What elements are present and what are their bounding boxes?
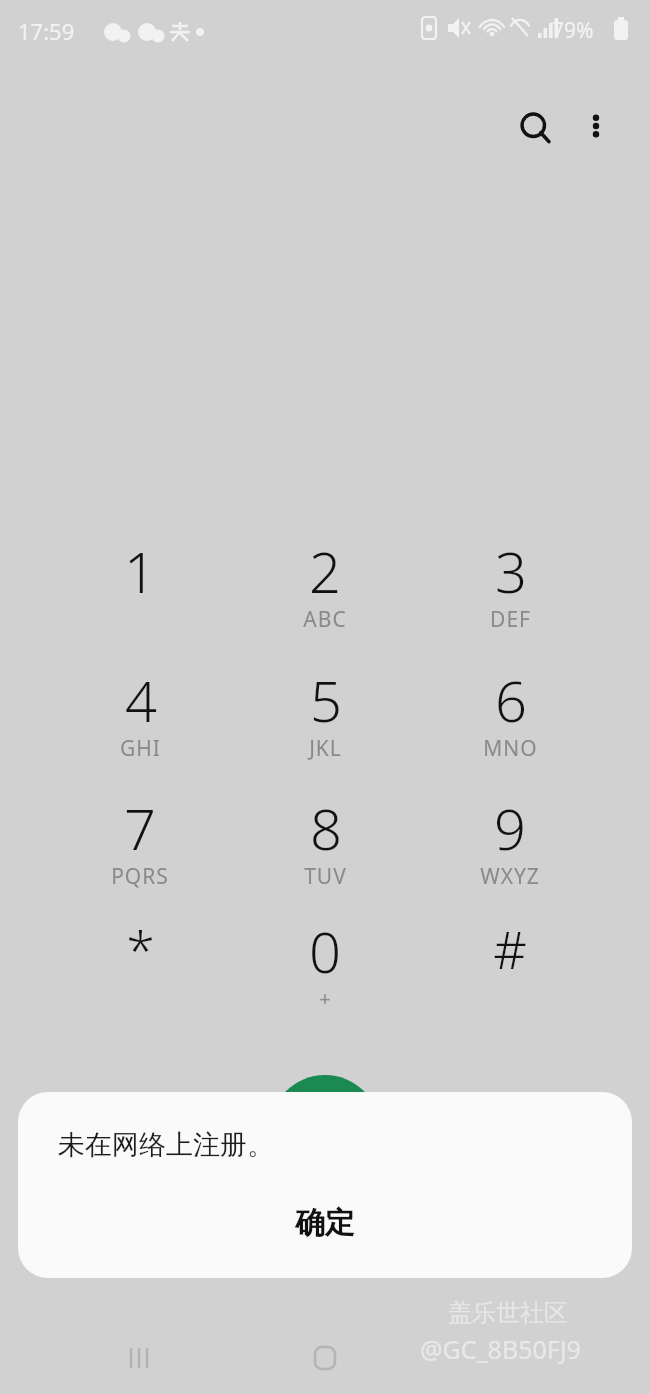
staticText: * — [126, 913, 155, 984]
staticText: 4 — [125, 662, 157, 738]
staticText: 0 — [309, 913, 341, 989]
button[interactable]: Recents — [108, 1326, 172, 1390]
button[interactable]: 2 — [250, 533, 400, 655]
button[interactable]: Search — [508, 100, 564, 156]
staticText: TUV — [304, 862, 347, 891]
staticText: 未在网络上注册。 — [58, 1128, 274, 1162]
button[interactable]: 8 — [250, 790, 400, 912]
button[interactable]: 6 — [435, 662, 585, 784]
button[interactable]: 9 — [435, 790, 585, 912]
button[interactable]: 5 — [250, 662, 400, 784]
staticText: 8 — [310, 790, 342, 866]
staticText: 盖乐世社区 — [448, 1298, 568, 1328]
button[interactable]: Home — [293, 1326, 357, 1390]
staticText: ABC — [303, 605, 347, 634]
staticText: 17:59 — [18, 16, 75, 46]
staticText: 9 — [494, 790, 526, 866]
staticText: 7 — [124, 790, 156, 866]
button[interactable]: 3 — [435, 533, 585, 655]
staticText: 2 — [309, 533, 341, 609]
staticText: GHI — [120, 734, 161, 763]
button[interactable]: 7 — [65, 790, 215, 912]
staticText: MNO — [483, 734, 538, 763]
button[interactable]: 4 — [65, 662, 215, 784]
staticText: # — [493, 913, 527, 984]
staticText: 3 — [495, 533, 527, 609]
staticText: JKL — [309, 734, 342, 763]
staticText: PQRS — [111, 862, 169, 891]
staticText: 5 — [310, 662, 342, 738]
staticText: @GC_8B50FJ9 — [420, 1332, 581, 1366]
staticText: 79% — [552, 16, 594, 45]
staticText: DEF — [490, 605, 531, 634]
button[interactable]: 0 — [250, 913, 400, 1035]
staticText: WXYZ — [480, 862, 540, 891]
staticText: + — [319, 985, 332, 1012]
button[interactable]: # — [435, 913, 585, 1035]
staticText: 1 — [124, 533, 156, 609]
button[interactable]: Call — [270, 1075, 380, 1185]
button[interactable]: 1 — [65, 533, 215, 655]
staticText: 6 — [495, 662, 527, 738]
staticText: 确定 — [295, 1204, 355, 1242]
button[interactable]: 确定 — [18, 1184, 632, 1262]
button[interactable]: More options — [570, 100, 622, 152]
button[interactable]: * — [65, 913, 215, 1035]
